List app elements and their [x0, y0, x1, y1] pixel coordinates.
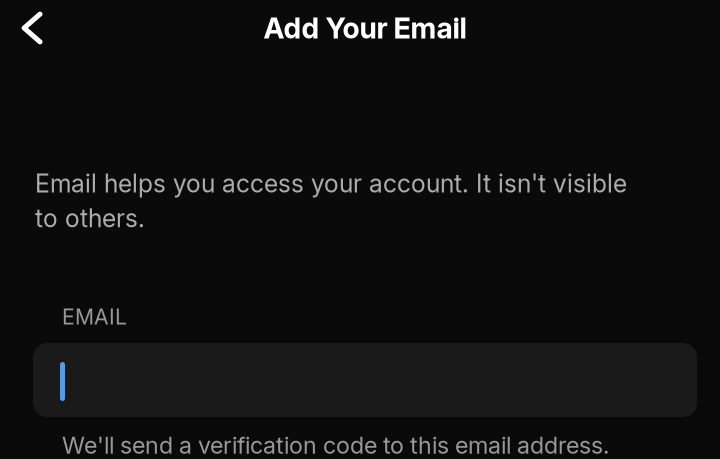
staticText: Add Your Email [263, 11, 466, 45]
staticText: We'll send a verification code to this e… [62, 431, 609, 459]
button[interactable]: Back [10, 6, 54, 50]
button[interactable] [33, 343, 697, 417]
staticText: EMAIL [62, 304, 127, 330]
staticText: Email helps you access your account. It … [35, 166, 627, 236]
